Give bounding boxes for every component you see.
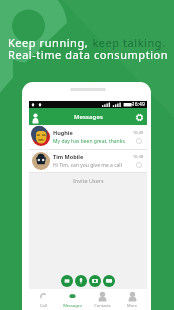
staticText: 16:49 <box>132 101 145 108</box>
staticText: 16:49 <box>133 130 144 135</box>
button[interactable]: More <box>117 289 147 310</box>
button[interactable]: Messages <box>58 289 87 310</box>
staticText: Messages <box>74 113 103 121</box>
staticText: Hughie <box>53 129 73 136</box>
staticText: 16:38 <box>133 154 144 159</box>
staticText: Call <box>40 303 47 308</box>
button[interactable]: Tim Mobile <box>29 150 147 172</box>
staticText: My day has been great, thanks for... <box>53 138 133 145</box>
button[interactable]: Contact <box>32 113 39 123</box>
staticText: Messages <box>63 303 82 308</box>
staticText: Real-time data consumption <box>8 47 169 62</box>
button[interactable]: Settings <box>135 113 144 122</box>
button[interactable]: Contacts <box>87 289 117 310</box>
staticText: Hi Tim, can you give me a call when... <box>53 162 133 169</box>
staticText: Contacts <box>94 303 111 308</box>
button[interactable]: New message <box>103 275 115 287</box>
button[interactable]: Hughie <box>29 125 147 149</box>
button[interactable]: Text style <box>61 275 73 287</box>
button[interactable]: Camera <box>89 275 101 287</box>
button[interactable]: Call <box>29 289 58 310</box>
staticText: Tim Mobile <box>53 153 84 160</box>
staticText: Keep running, <box>8 35 89 50</box>
button[interactable]: Voice message <box>75 275 87 287</box>
staticText: keep talking. <box>89 35 166 50</box>
staticText: Invite Users <box>73 177 104 184</box>
staticText: More <box>127 303 137 308</box>
